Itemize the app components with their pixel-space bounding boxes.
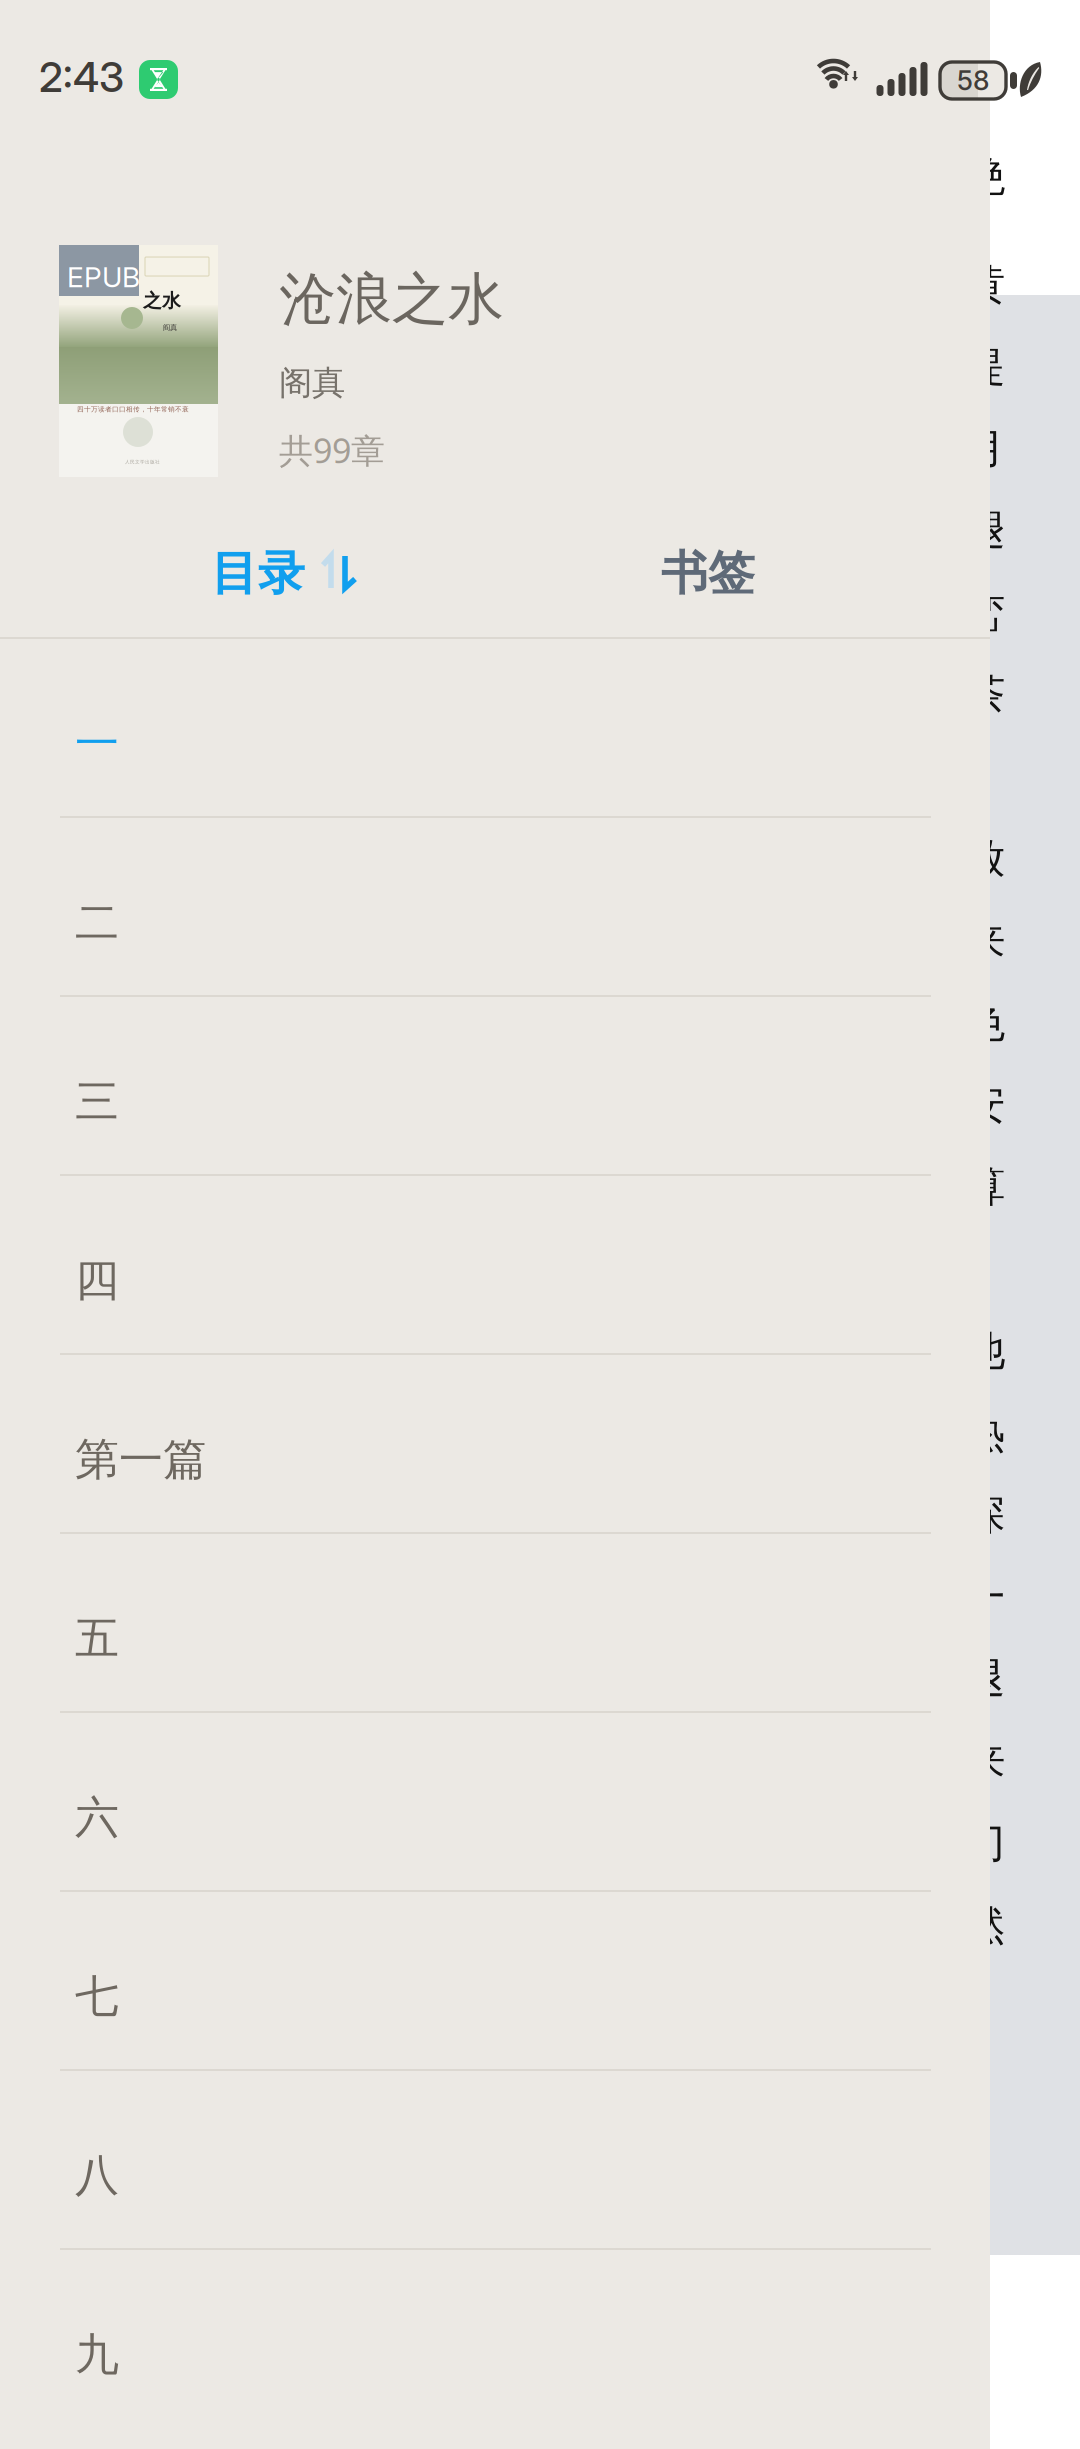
staticText: 真正留下的，是人与人之间那一点点温暖的牵挂。他 bbox=[62, 1325, 1005, 1377]
staticText: 四 bbox=[75, 1253, 119, 1308]
button[interactable]: 二 bbox=[0, 818, 990, 997]
staticText: 阎真 bbox=[163, 323, 177, 332]
button[interactable]: 第一篇 bbox=[0, 1355, 990, 1534]
button[interactable]: 七 bbox=[0, 1892, 990, 2071]
staticText: 之水 bbox=[143, 289, 181, 312]
staticText: 样纯粹。那一刻，时间仿佛停住了，所有的喧嚣都退 bbox=[62, 1653, 1005, 1705]
staticText: 辜负。年轻时追逐的那些东西，如今看来不过云烟， bbox=[62, 1243, 1005, 1295]
staticText: 六 bbox=[75, 1790, 119, 1845]
staticText: 阁真 bbox=[279, 362, 345, 404]
staticText: 五 bbox=[75, 1611, 119, 1666]
button[interactable]: 五 bbox=[0, 1534, 990, 1713]
button[interactable]: 书签 bbox=[495, 523, 990, 637]
staticText: 去，只剩下他和这一院子的花香，以及心里那份迟来 bbox=[62, 1735, 1005, 1787]
staticText: 无声，人事已非，可有些东西始终留在心底，不曾褪 bbox=[62, 505, 1005, 557]
staticText: 共99章 bbox=[279, 427, 385, 473]
staticText: 详的侧脸。他忽然觉得，这一生虽有遗憾，却也不算 bbox=[62, 1161, 1005, 1213]
staticText: ，字迹却依旧清晰。那些话语仿佛还在耳边回响，提 bbox=[62, 341, 1005, 393]
staticText: EPUB bbox=[67, 260, 140, 294]
staticText: 2:43 bbox=[39, 52, 124, 102]
staticText: 四十万读者口口相传，十年常销不衰 bbox=[77, 405, 189, 413]
staticText: 58 bbox=[957, 64, 989, 97]
button[interactable]: 六 bbox=[0, 1713, 990, 1892]
staticText: 一 bbox=[75, 716, 119, 771]
staticText: 人活着，总要有点念想。于是他笑了笑，把信重新放 bbox=[62, 833, 1005, 885]
button[interactable]: 一 bbox=[0, 639, 990, 818]
button[interactable]: 四 bbox=[0, 1176, 990, 1355]
staticText: 二 bbox=[75, 895, 119, 950]
staticText: 醒着他曾经许下的诺言，以及从未实现的理想。岁月 bbox=[62, 423, 1005, 475]
staticText: 七 bbox=[75, 1969, 119, 2024]
staticText: 三 bbox=[75, 1074, 119, 1129]
staticText: 闹，香气扑面而来，像是某种久别重逢的问候。他深 bbox=[62, 1489, 1005, 1541]
staticText: 深地吸了一口气，然后慢慢地笑了，笑得像个孩子一 bbox=[62, 1571, 1005, 1623]
button[interactable]: 九 bbox=[0, 2250, 990, 2429]
staticText: 一段往事在心头浮现，多年前的那个夏天，蝉鸣不绝于 bbox=[62, 151, 1005, 255]
staticText: 色，也不曾远离。他合上信纸，抬头望向远处的山峦 bbox=[62, 587, 1005, 639]
staticText: 第一篇 bbox=[75, 1432, 207, 1487]
staticText: 八 bbox=[75, 2148, 119, 2203]
button[interactable]: 之水 bbox=[0, 225, 990, 495]
staticText: ，暮色正一点点地漫过屋檐，落在书桌上那只青瓷茶 bbox=[62, 669, 1005, 721]
staticText: 目录 bbox=[211, 544, 305, 603]
staticText: 耳，他独自坐在窗前，翻看一封旧信，信纸已经泛黄 bbox=[62, 259, 1005, 311]
staticText: 的安宁。后来他常常想起这个黄昏，想起自己站在门 bbox=[62, 1817, 1005, 1869]
staticText: 口的样子，想起那阵风，那些花，和那一瞬间的释然 bbox=[62, 1899, 1005, 1951]
staticText: 人民文学出版社 bbox=[125, 459, 160, 465]
staticText: 回抽屉，像是把一段时光妥帖地收藏起来，留待将来 bbox=[62, 915, 1005, 967]
staticText: 也暗了下来，屋里只剩下一盏台灯，照着他苍老而安 bbox=[62, 1079, 1005, 1131]
staticText: 沧浪之水 bbox=[280, 264, 504, 334]
button[interactable]: 八 bbox=[0, 2071, 990, 2250]
button[interactable]: 三 bbox=[0, 997, 990, 1176]
button[interactable]: 目录 bbox=[0, 523, 495, 637]
staticText: 站起身，走到门口，推开门，院子里的桂花正开得热 bbox=[62, 1407, 1005, 1459]
staticText: 某个同样安静的黄昏再读。窗外的风渐渐小了，天色 bbox=[62, 997, 1005, 1049]
staticText: 书签 bbox=[661, 544, 755, 603]
staticText: 九 bbox=[75, 2327, 119, 2382]
